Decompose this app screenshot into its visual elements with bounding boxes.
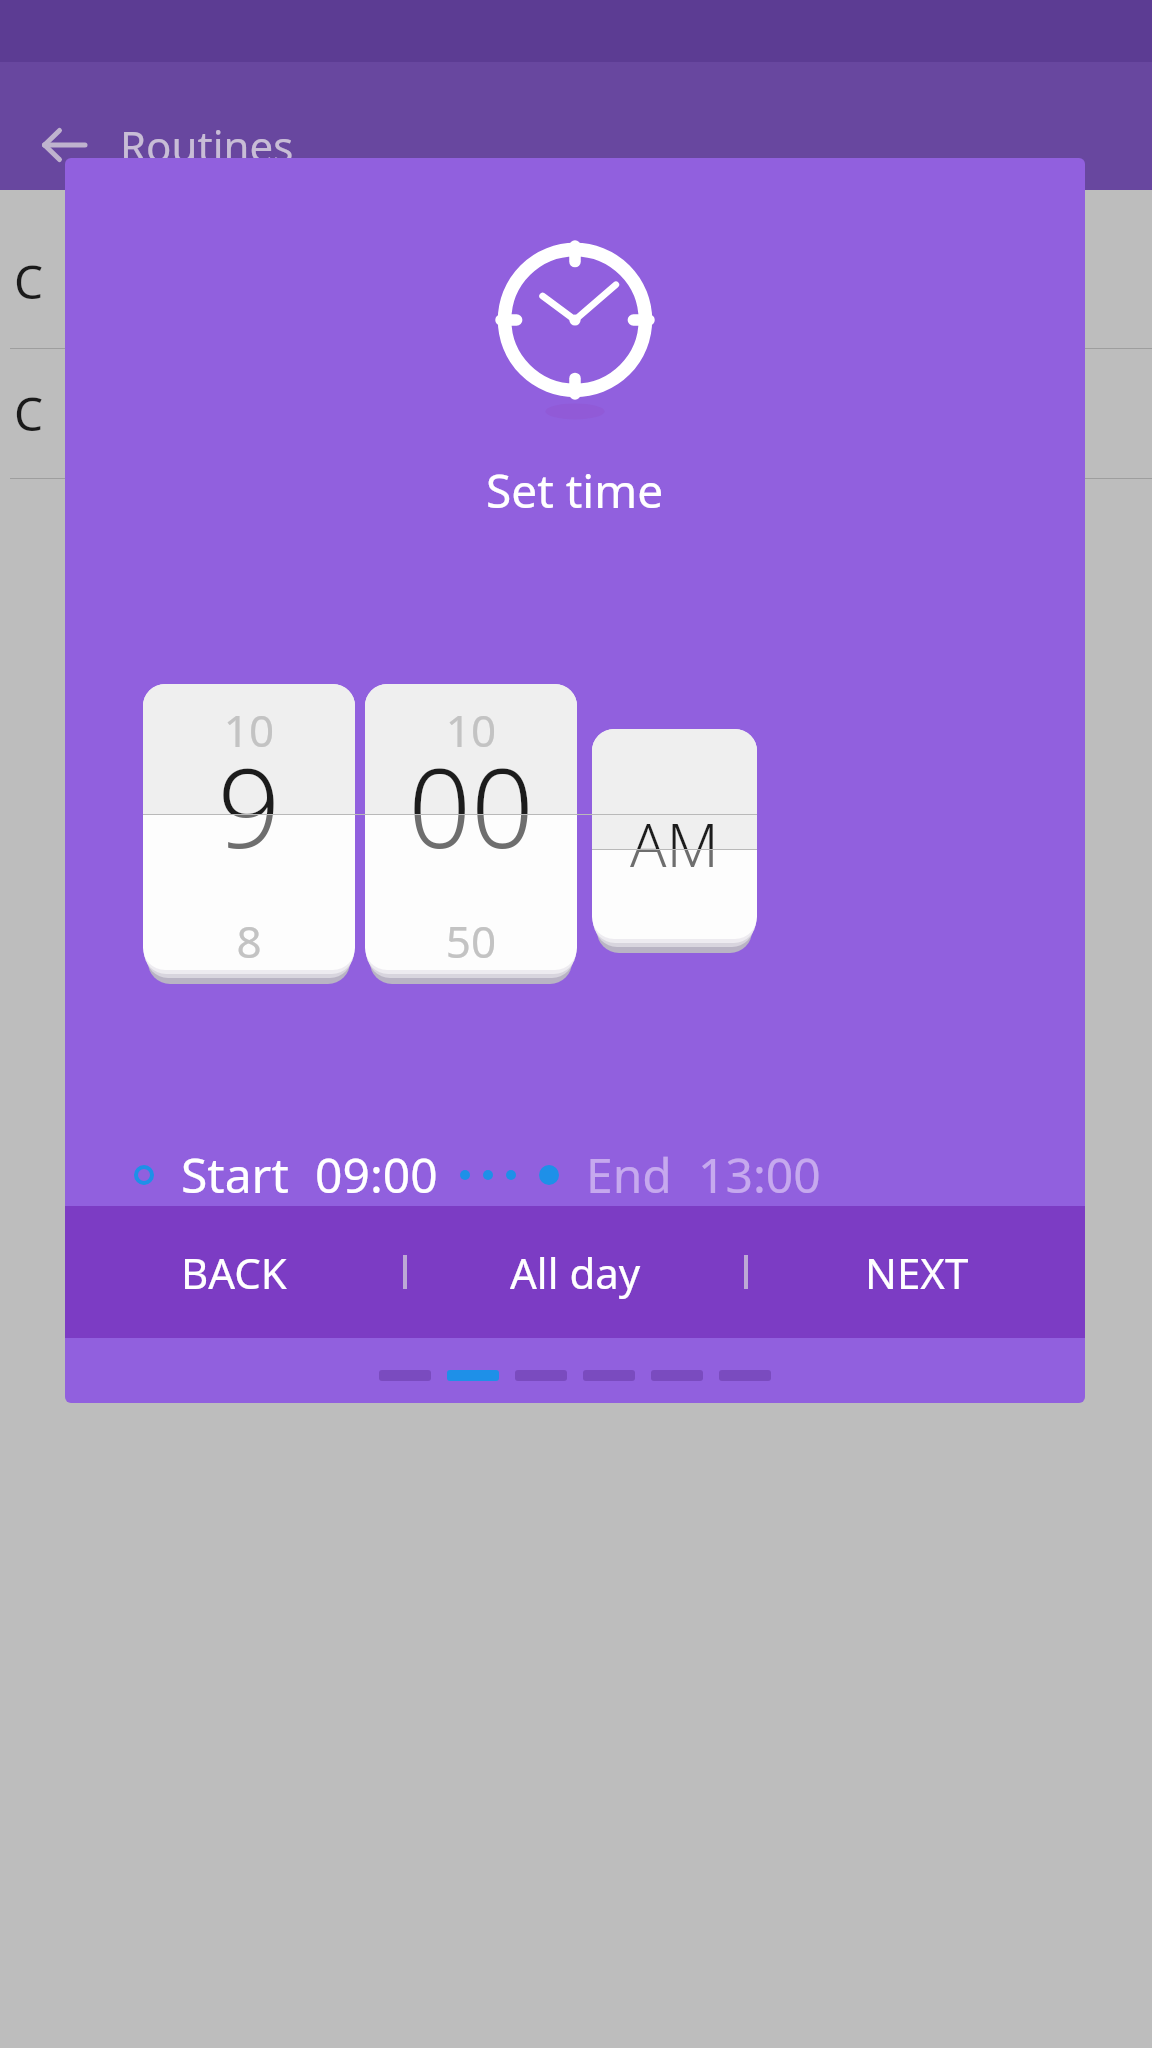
staticText: AM xyxy=(592,803,757,849)
staticText: 8 xyxy=(143,911,355,970)
staticText: 50 xyxy=(365,911,577,970)
staticText: AM xyxy=(592,850,757,885)
button[interactable]: 10 xyxy=(365,684,577,970)
button[interactable]: NEXT xyxy=(748,1206,1085,1338)
staticText: 09:00 xyxy=(315,1142,438,1207)
button[interactable]: End xyxy=(586,1142,821,1207)
staticText: 9 xyxy=(143,815,355,880)
staticText: 00 xyxy=(365,731,577,814)
staticText: C xyxy=(14,382,44,445)
button[interactable]: Start xyxy=(181,1142,438,1207)
staticText: 10 xyxy=(143,700,355,760)
staticText: 10 xyxy=(365,700,577,760)
button[interactable] xyxy=(447,1370,499,1381)
staticText: Set time xyxy=(486,459,664,522)
staticText: C xyxy=(14,250,44,313)
staticText: 13:00 xyxy=(698,1142,821,1207)
staticText: Routines xyxy=(120,117,294,174)
staticText: All day xyxy=(510,1244,641,1301)
button[interactable]: All day xyxy=(407,1206,744,1338)
staticText: Start xyxy=(181,1142,289,1207)
button[interactable]: BACK xyxy=(65,1206,403,1338)
staticText: 9 xyxy=(143,731,355,814)
staticText: End xyxy=(586,1142,672,1207)
button[interactable]: Back xyxy=(32,114,94,176)
button[interactable]: AM xyxy=(592,729,757,939)
button[interactable]: 10 xyxy=(143,684,355,970)
staticText: NEXT xyxy=(865,1244,969,1301)
staticText: 00 xyxy=(365,815,577,880)
staticText: BACK xyxy=(181,1244,287,1301)
